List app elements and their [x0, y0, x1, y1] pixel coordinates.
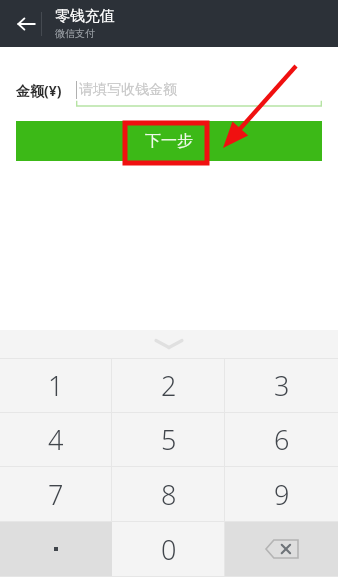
- staticText: 2: [161, 367, 177, 404]
- button[interactable]: 下一步: [16, 121, 322, 161]
- button[interactable]: 1: [0, 359, 112, 412]
- staticText: 1: [48, 367, 64, 404]
- staticText: 5: [161, 421, 177, 458]
- staticText: 7: [48, 476, 64, 513]
- button[interactable]: Back: [0, 0, 52, 47]
- staticText: 6: [274, 421, 290, 458]
- staticText: 9: [274, 476, 290, 513]
- button[interactable]: [0, 522, 112, 576]
- button[interactable]: 7: [0, 467, 112, 521]
- staticText: 0: [161, 531, 177, 568]
- button[interactable]: 2: [112, 359, 225, 412]
- staticText: 4: [48, 421, 64, 458]
- button[interactable]: 4: [0, 413, 112, 466]
- button[interactable]: 6: [225, 413, 338, 466]
- staticText: 请填写收钱金额: [79, 81, 177, 99]
- staticText: 下一步: [145, 131, 193, 151]
- button[interactable]: 5: [112, 413, 225, 466]
- button[interactable]: 请填写收钱金额: [76, 73, 322, 107]
- button[interactable]: 9: [225, 467, 338, 521]
- button[interactable]: 8: [112, 467, 225, 521]
- staticText: 零钱充值: [55, 7, 115, 26]
- button[interactable]: 3: [225, 359, 338, 412]
- button[interactable]: Backspace: [225, 522, 338, 576]
- staticText: 3: [274, 367, 290, 404]
- staticText: 8: [161, 476, 177, 513]
- button[interactable]: 0: [112, 522, 225, 576]
- staticText: 微信支付: [55, 27, 95, 40]
- staticText: 金额(¥): [16, 81, 62, 100]
